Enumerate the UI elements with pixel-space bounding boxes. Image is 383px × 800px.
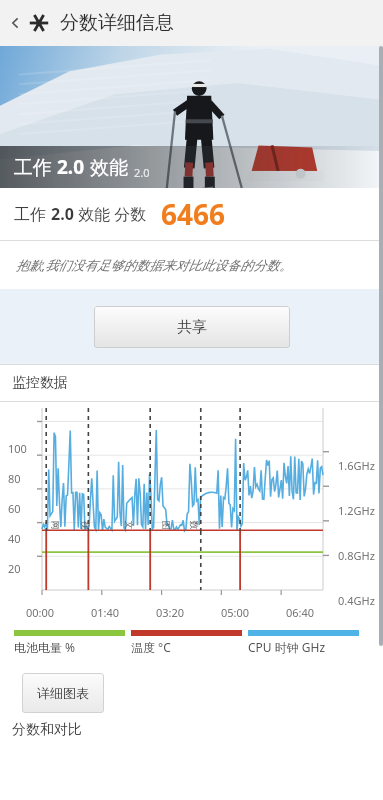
staticText: 电池电量 %	[14, 639, 76, 655]
staticText: 06:40	[286, 605, 315, 620]
staticText: 监控数据	[12, 374, 68, 392]
staticText: 抱歉,我们没有足够的数据来对比此设备的分数。	[16, 256, 293, 274]
staticText: 2.0	[51, 203, 74, 225]
staticText: 60	[8, 501, 21, 516]
staticText: 05:00	[221, 605, 250, 620]
staticText: 工作	[14, 203, 51, 225]
staticText: 2.0	[57, 154, 85, 180]
staticText: 20	[8, 561, 21, 576]
staticText: 6466	[161, 195, 226, 233]
staticText: 分数和对比	[12, 721, 82, 739]
staticText: 共享	[177, 318, 207, 337]
staticText: 100	[8, 441, 27, 456]
staticText: 1.6GHz	[338, 458, 375, 473]
staticText: 效能	[85, 154, 128, 180]
staticText: 0.4GHz	[338, 593, 375, 608]
staticText: 详细图表	[37, 685, 89, 701]
button[interactable]: 详细图表	[22, 673, 104, 713]
staticText: 00:00	[26, 605, 55, 620]
staticText: 工作	[14, 154, 57, 180]
staticText: 03:20	[156, 605, 185, 620]
staticText: 40	[8, 531, 21, 546]
staticText: 数据操作	[188, 520, 199, 534]
staticText: 80	[8, 471, 21, 486]
staticText: 图片编辑 2.0	[160, 520, 171, 534]
staticText: 网络浏览 2.0	[49, 520, 60, 534]
button[interactable]: 共享	[94, 306, 290, 348]
staticText: 2.0	[134, 165, 150, 180]
staticText: 视频编辑	[79, 520, 90, 534]
staticText: 0.8GHz	[338, 548, 375, 563]
staticText: CPU 时钟 GHz	[248, 639, 326, 655]
staticText: 01:40	[91, 605, 120, 620]
staticText: 温度 °C	[131, 639, 171, 655]
staticText: 分数详细信息	[60, 11, 174, 35]
staticText: 效能 分数	[74, 203, 147, 225]
button[interactable]: Back	[4, 12, 26, 34]
staticText: 1.2GHz	[338, 503, 375, 518]
staticText: 文档编写 2.0	[123, 520, 134, 534]
